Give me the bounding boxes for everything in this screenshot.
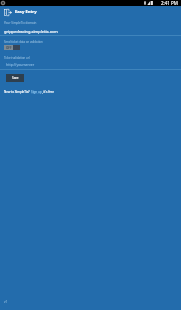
- staticText: http://yourserver: [6, 62, 35, 67]
- staticText: grippedracing.simpletix.com: [4, 29, 58, 34]
- button[interactable]: Send ticket data on validation, off: [4, 45, 20, 50]
- staticText: OFF: [6, 46, 12, 50]
- staticText: 2:41 PM: [161, 0, 178, 6]
- staticText: Easy Entry: [15, 9, 37, 15]
- staticText: Send ticket data on validation: [4, 40, 43, 44]
- staticText: v1: [4, 300, 8, 304]
- button[interactable]: Sign up: [31, 90, 42, 94]
- staticText: Save: [12, 76, 19, 80]
- staticText: Ticket validation url: [4, 56, 30, 60]
- staticText: , it's free: [42, 90, 54, 94]
- staticText: Your SimpleTix domain: [4, 21, 37, 25]
- button[interactable]: Save: [6, 74, 24, 82]
- other: Easy Entry: [4, 9, 12, 16]
- staticText: New to SimpleTix?: [4, 90, 31, 94]
